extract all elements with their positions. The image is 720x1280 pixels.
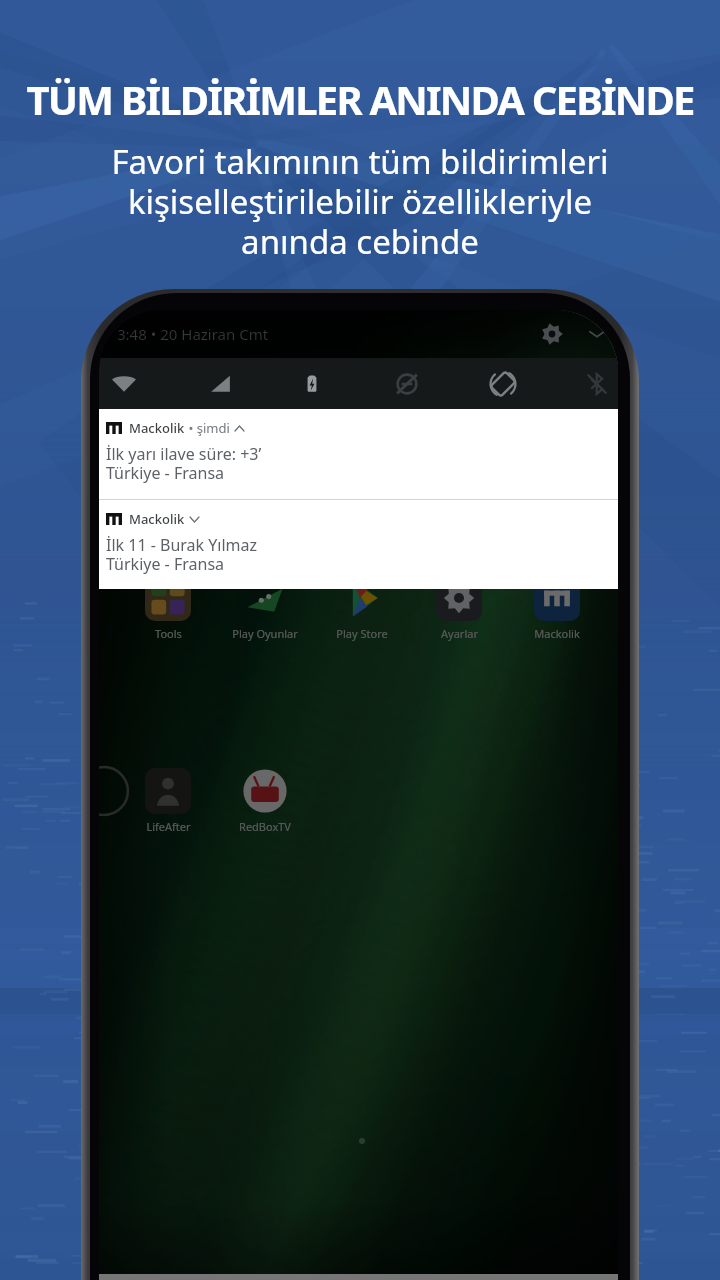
staticText: İlk yarı ilave süre: +3’ Türkiye - Frans… — [106, 443, 262, 484]
button[interactable]: RedBoxTV — [231, 768, 299, 834]
button[interactable]: Bluetooth off — [574, 361, 618, 407]
staticText: Mackolik — [129, 510, 185, 528]
button[interactable]: Mackolik — [99, 500, 618, 589]
staticText: Ayarlar — [441, 626, 478, 641]
staticText: Mackolik — [534, 626, 580, 641]
button[interactable]: Mackolik — [99, 409, 618, 499]
button[interactable]: Collapse — [586, 323, 608, 345]
button[interactable]: Mobile signal — [197, 361, 243, 407]
button[interactable]: Play Store — [328, 575, 396, 641]
button[interactable]: Do not disturb — [384, 361, 430, 407]
staticText: Play Oyunlar — [232, 626, 298, 641]
staticText: LifeAfter — [146, 819, 191, 834]
button[interactable]: Tools — [134, 575, 202, 641]
button[interactable]: Wi-Fi — [101, 361, 147, 407]
staticText: 3:48 • 20 Haziran Cmt — [117, 324, 269, 344]
staticText: İlk 11 - Burak Yılmaz Türkiye - Fransa — [106, 534, 258, 575]
staticText: Tools — [155, 626, 182, 641]
staticText: TÜM BİLDİRİMLER ANINDA CEBİNDE — [0, 72, 720, 126]
button[interactable]: Settings — [539, 321, 565, 347]
staticText: RedBoxTV — [239, 819, 291, 834]
button[interactable]: Play Oyunlar — [231, 575, 299, 641]
staticText: Favori takımının tüm bildirimleri kişise… — [0, 139, 720, 264]
button[interactable]: LifeAfter — [134, 768, 202, 834]
button[interactable]: Ayarlar — [425, 575, 493, 641]
staticText: Play Store — [336, 626, 388, 641]
button[interactable]: Battery saver — [289, 361, 335, 407]
button[interactable]: Auto rotate — [480, 361, 526, 407]
staticText: • şimdi — [185, 419, 230, 437]
staticText: Mackolik — [129, 419, 185, 437]
button[interactable]: Mackolik — [523, 575, 591, 641]
